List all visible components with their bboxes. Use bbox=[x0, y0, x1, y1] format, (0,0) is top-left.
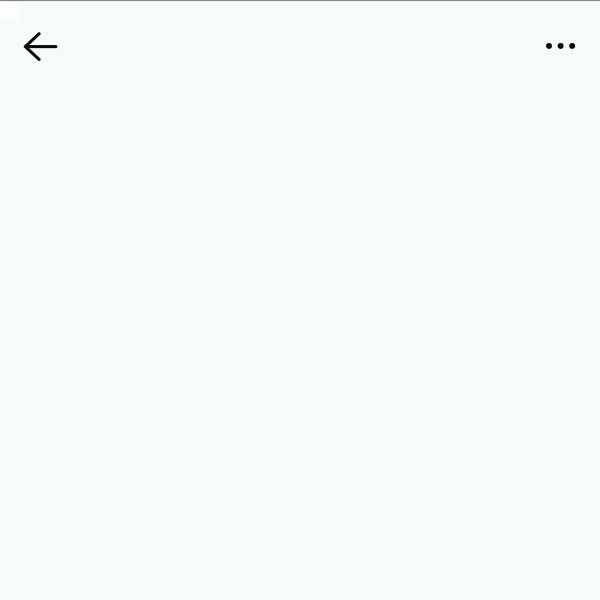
button[interactable]: Back bbox=[17, 23, 65, 71]
button[interactable]: More options bbox=[537, 22, 585, 70]
